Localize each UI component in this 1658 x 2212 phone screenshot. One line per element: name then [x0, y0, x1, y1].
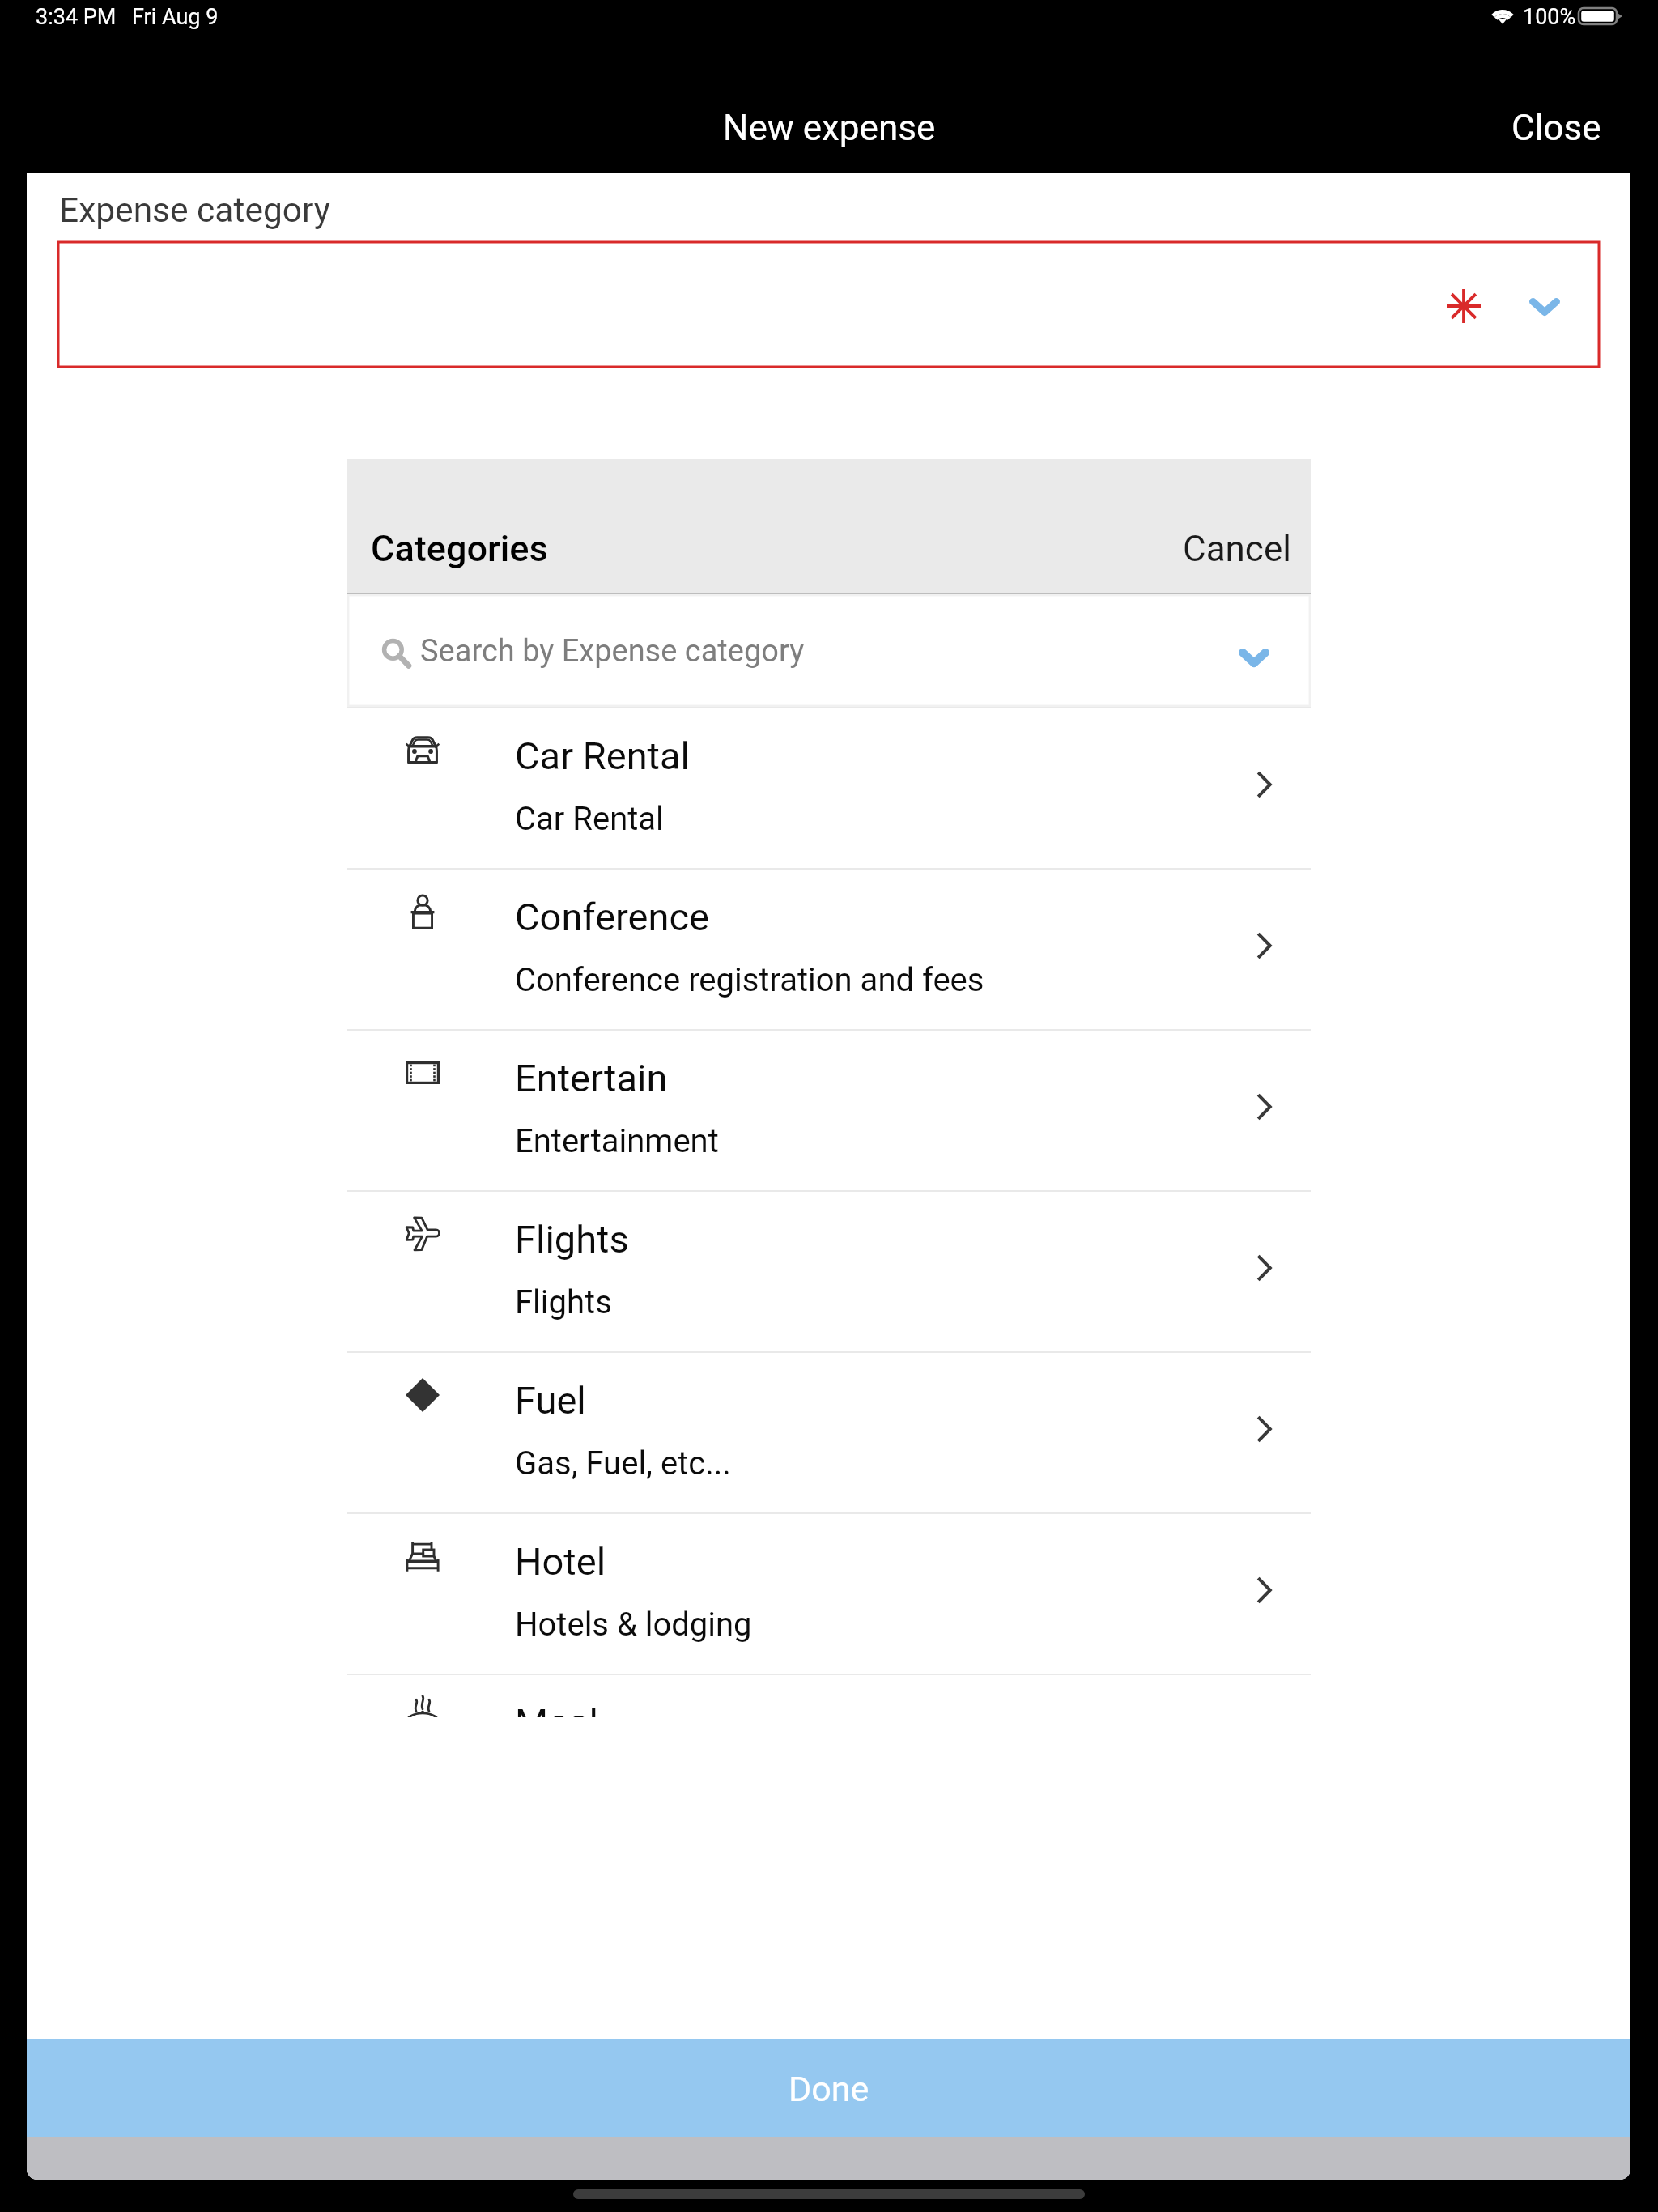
- button[interactable]: Required field: [58, 242, 1599, 367]
- staticText: Entertain: [515, 1056, 668, 1100]
- staticText: New expense: [723, 107, 936, 149]
- button[interactable]: Hotel: [347, 1514, 1311, 1674]
- staticText: 100%: [1523, 4, 1576, 30]
- staticText: Done: [789, 2069, 869, 2109]
- staticText: Fuel: [515, 1378, 586, 1423]
- staticText: Entertainment: [515, 1122, 719, 1160]
- staticText: Fri Aug 9: [132, 4, 219, 30]
- staticText: Car Rental: [515, 734, 690, 778]
- staticText: Hotel: [515, 1539, 606, 1584]
- button[interactable]: Close: [1463, 84, 1658, 172]
- button[interactable]: Flights: [347, 1192, 1311, 1351]
- button[interactable]: Open category picker: [1507, 275, 1583, 337]
- staticText: Close: [1511, 107, 1601, 149]
- staticText: Flights: [515, 1217, 629, 1261]
- other: Select Flights: [1256, 1254, 1272, 1282]
- other: Select Hotel: [1256, 1576, 1272, 1604]
- staticText: Conference: [515, 895, 709, 939]
- button[interactable]: Expand category list: [1216, 627, 1292, 688]
- staticText: Categories: [371, 527, 548, 570]
- button[interactable]: Car Rental: [347, 708, 1311, 868]
- staticText: Flights: [515, 1283, 612, 1321]
- other: Select Fuel: [1256, 1415, 1272, 1443]
- other: Required field: [1447, 289, 1481, 323]
- button[interactable]: Meal: [347, 1675, 1311, 1717]
- other: Select Entertain: [1256, 1093, 1272, 1121]
- button[interactable]: Done: [27, 2039, 1630, 2137]
- button[interactable]: Search by Expense category: [347, 594, 1311, 707]
- staticText: Car Rental: [515, 800, 664, 838]
- staticText: Gas, Fuel, etc...: [515, 1444, 731, 1482]
- other: Select Car Rental: [1256, 771, 1272, 798]
- staticText: Expense category: [59, 190, 330, 231]
- other: Select Conference: [1256, 932, 1272, 959]
- staticText: Cancel: [1183, 528, 1291, 570]
- staticText: Meal: [515, 1700, 598, 1717]
- staticText: Hotels & lodging: [515, 1606, 752, 1644]
- button[interactable]: Entertain: [347, 1031, 1311, 1190]
- button[interactable]: Fuel: [347, 1353, 1311, 1512]
- button[interactable]: Conference: [347, 870, 1311, 1029]
- staticText: Conference registration and fees: [515, 961, 984, 999]
- staticText: 3:34 PM: [36, 4, 117, 30]
- button[interactable]: Cancel: [1150, 505, 1311, 588]
- staticText: Search by Expense category: [420, 633, 805, 670]
